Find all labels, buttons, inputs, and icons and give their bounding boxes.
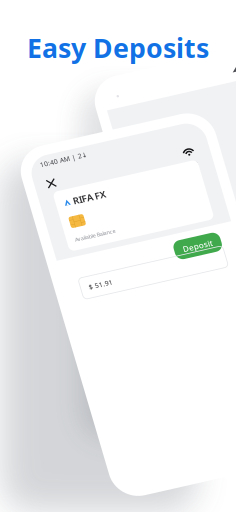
staticText: 10:40 AM | 2↓ bbox=[35, 166, 83, 175]
button[interactable]: Close bbox=[33, 184, 47, 198]
staticText: Deposit bbox=[146, 279, 176, 290]
staticText: Available Balance bbox=[47, 248, 88, 255]
button[interactable]: Deposit bbox=[138, 275, 185, 295]
staticText: $ 51.91 bbox=[47, 297, 71, 305]
staticText: Easy Deposits bbox=[27, 30, 209, 65]
staticText: RIFA FX bbox=[56, 207, 89, 219]
